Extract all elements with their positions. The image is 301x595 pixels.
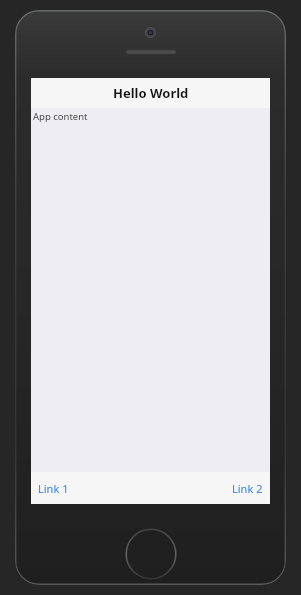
staticText: Hello World — [113, 84, 189, 102]
button[interactable]: Link 2 — [231, 477, 264, 500]
button[interactable]: Link 1 — [37, 477, 70, 500]
staticText: App content — [33, 110, 88, 123]
staticText: Link 2 — [232, 481, 263, 496]
button[interactable]: Home — [125, 528, 177, 580]
staticText: Link 1 — [38, 481, 69, 496]
